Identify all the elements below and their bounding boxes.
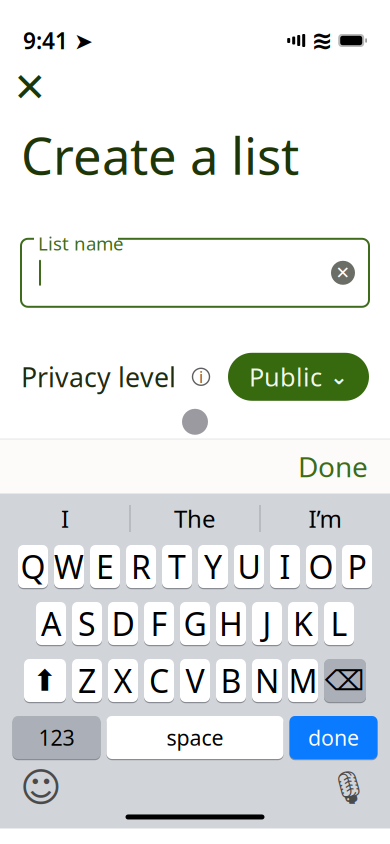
button[interactable]: I’m	[260, 495, 389, 541]
staticText: Q	[20, 545, 45, 588]
staticText: The	[174, 503, 216, 534]
staticText: Public	[249, 360, 322, 394]
staticText: Create a list	[21, 121, 299, 189]
button[interactable]: 123	[12, 714, 100, 760]
staticText: 🎙	[328, 769, 369, 806]
staticText: T	[168, 545, 186, 588]
button[interactable]: P	[342, 543, 372, 589]
staticText: A	[41, 602, 61, 645]
button[interactable]: Clear text	[321, 251, 365, 295]
button[interactable]: Q	[18, 543, 48, 589]
button[interactable]: L	[324, 600, 354, 646]
button[interactable]: A	[36, 600, 66, 646]
button[interactable]: Close	[8, 65, 52, 109]
button[interactable]: N	[252, 657, 282, 703]
staticText: I’m	[308, 503, 341, 534]
staticText: X	[113, 659, 132, 702]
button[interactable]: U	[234, 543, 264, 589]
staticText: G	[183, 602, 206, 645]
button[interactable]: I	[270, 543, 300, 589]
button[interactable]: Y	[198, 543, 228, 589]
staticText: ⌫	[325, 665, 365, 696]
staticText: J	[262, 602, 271, 645]
staticText: L	[330, 602, 347, 645]
staticText: space	[166, 723, 223, 752]
staticText: I	[61, 503, 69, 534]
button[interactable]: V	[180, 657, 210, 703]
button[interactable]: S	[72, 600, 102, 646]
staticText: S	[78, 602, 96, 645]
button[interactable]: D	[108, 600, 138, 646]
staticText: Y	[204, 545, 222, 588]
staticText: ☺	[20, 765, 62, 810]
button[interactable]: R	[126, 543, 156, 589]
button[interactable]: Public	[228, 353, 369, 401]
staticText: List name	[38, 231, 124, 256]
staticText: D	[111, 602, 134, 645]
button[interactable]: F	[144, 600, 174, 646]
staticText: P	[347, 545, 366, 588]
staticText: ✕	[335, 263, 350, 283]
button[interactable]: Z	[72, 657, 102, 703]
button[interactable]: space	[106, 714, 283, 760]
staticText: E	[96, 545, 114, 588]
staticText: H	[219, 602, 243, 645]
button[interactable]: The	[130, 495, 259, 541]
staticText: 9:41 ➤	[23, 25, 93, 56]
staticText: ≋	[311, 26, 332, 55]
button[interactable]: T	[162, 543, 192, 589]
button[interactable]: I	[0, 495, 129, 541]
staticText: F	[150, 602, 167, 645]
button[interactable]: O	[306, 543, 336, 589]
staticText: V	[185, 659, 204, 702]
staticText: U	[237, 545, 260, 588]
staticText: i	[199, 366, 203, 387]
staticText: Done	[298, 448, 368, 485]
staticText: ⌄	[330, 365, 348, 389]
staticText: C	[149, 659, 169, 702]
button[interactable]: Delete	[324, 657, 366, 703]
staticText: I	[279, 545, 290, 588]
staticText: M	[288, 659, 317, 702]
button[interactable]: C	[144, 657, 174, 703]
button[interactable]: K	[288, 600, 318, 646]
button[interactable]: M	[288, 657, 318, 703]
button[interactable]: About privacy levels	[186, 362, 216, 392]
button[interactable]: Shift	[24, 657, 66, 703]
staticText: R	[131, 545, 151, 588]
button[interactable]: Emoji	[16, 765, 66, 809]
staticText: O	[308, 545, 333, 588]
button[interactable]: E	[90, 543, 120, 589]
staticText: Privacy level	[21, 359, 176, 394]
staticText: B	[220, 659, 241, 702]
button[interactable]: W	[54, 543, 84, 589]
button[interactable]: H	[216, 600, 246, 646]
staticText: ⬆	[32, 664, 57, 697]
button[interactable]: G	[180, 600, 210, 646]
staticText: K	[293, 602, 313, 645]
button[interactable]: B	[216, 657, 246, 703]
staticText: 123	[38, 723, 74, 752]
button[interactable]: done	[289, 714, 377, 760]
staticText: W	[54, 545, 84, 588]
staticText: done	[308, 723, 359, 752]
button[interactable]: X	[108, 657, 138, 703]
staticText: Z	[78, 659, 96, 702]
button[interactable]: Dictation	[324, 765, 374, 809]
staticText: N	[255, 659, 279, 702]
staticText: ✕	[13, 65, 47, 110]
button[interactable]: J	[252, 600, 282, 646]
button[interactable]: Done	[280, 443, 386, 489]
